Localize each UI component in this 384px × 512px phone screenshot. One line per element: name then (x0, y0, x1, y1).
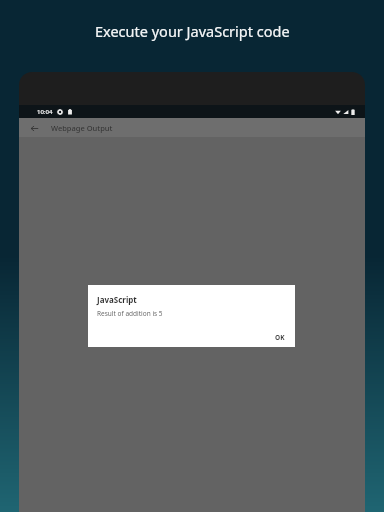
staticText: Webpage Output (51, 123, 113, 133)
staticText: Result of addition is 5 (97, 309, 163, 318)
staticText: 10:04 (37, 108, 53, 116)
staticText: JavaScript (97, 294, 137, 305)
button[interactable]: Back (26, 120, 42, 136)
staticText: Execute your JavaScript code (95, 21, 290, 41)
staticText: OK (275, 333, 285, 342)
button[interactable]: OK (265, 328, 295, 347)
